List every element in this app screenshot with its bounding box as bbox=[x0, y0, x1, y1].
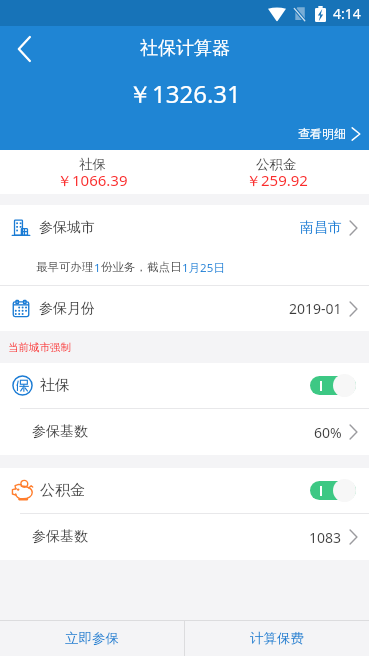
staticText: 社保 bbox=[40, 376, 70, 395]
staticText: 参保基数 bbox=[32, 528, 88, 546]
button[interactable]: 立即参保 bbox=[0, 620, 184, 656]
staticText: 社保 bbox=[79, 156, 106, 173]
staticText: 查看明细 bbox=[298, 126, 346, 141]
staticText: 2019-01 bbox=[289, 299, 342, 318]
staticText: 最早可办理 bbox=[36, 260, 94, 274]
staticText: 当前城市强制 bbox=[8, 341, 71, 354]
staticText: 南昌市 bbox=[300, 219, 342, 237]
button[interactable]: 参保城市 bbox=[0, 205, 369, 250]
staticText: ￥1066.39 bbox=[57, 170, 128, 190]
button[interactable]: Toggle 社保 bbox=[310, 374, 356, 397]
button[interactable]: 查看明细 bbox=[296, 123, 363, 144]
staticText: ￥1326.31 bbox=[128, 77, 241, 110]
staticText: 份业务，截点日 bbox=[101, 260, 182, 274]
staticText: 立即参保 bbox=[65, 630, 119, 647]
button[interactable]: 计算保费 bbox=[185, 620, 369, 656]
button[interactable]: 参保月份 bbox=[0, 286, 369, 331]
staticText: ￥259.92 bbox=[246, 170, 308, 190]
staticText: 参保城市 bbox=[39, 219, 95, 237]
staticText: 参保月份 bbox=[39, 300, 95, 318]
button[interactable]: Back bbox=[6, 31, 42, 67]
button[interactable]: 社保 bbox=[0, 363, 369, 408]
staticText: 社保计算器 bbox=[140, 37, 230, 60]
staticText: 1083 bbox=[309, 528, 342, 547]
button[interactable]: 参保基数 bbox=[0, 409, 369, 455]
staticText: 4:14 bbox=[333, 4, 361, 23]
staticText: 1月25日 bbox=[182, 260, 225, 276]
staticText: 参保基数 bbox=[32, 423, 88, 441]
staticText: 60% bbox=[314, 423, 342, 442]
button[interactable]: 参保基数 bbox=[0, 514, 369, 560]
staticText: 公积金 bbox=[40, 481, 85, 500]
staticText: 1 bbox=[94, 260, 101, 276]
button[interactable]: Toggle 公积金 bbox=[310, 479, 356, 502]
button[interactable]: 公积金 bbox=[0, 468, 369, 513]
staticText: 公积金 bbox=[256, 156, 297, 173]
staticText: 计算保费 bbox=[250, 630, 304, 647]
